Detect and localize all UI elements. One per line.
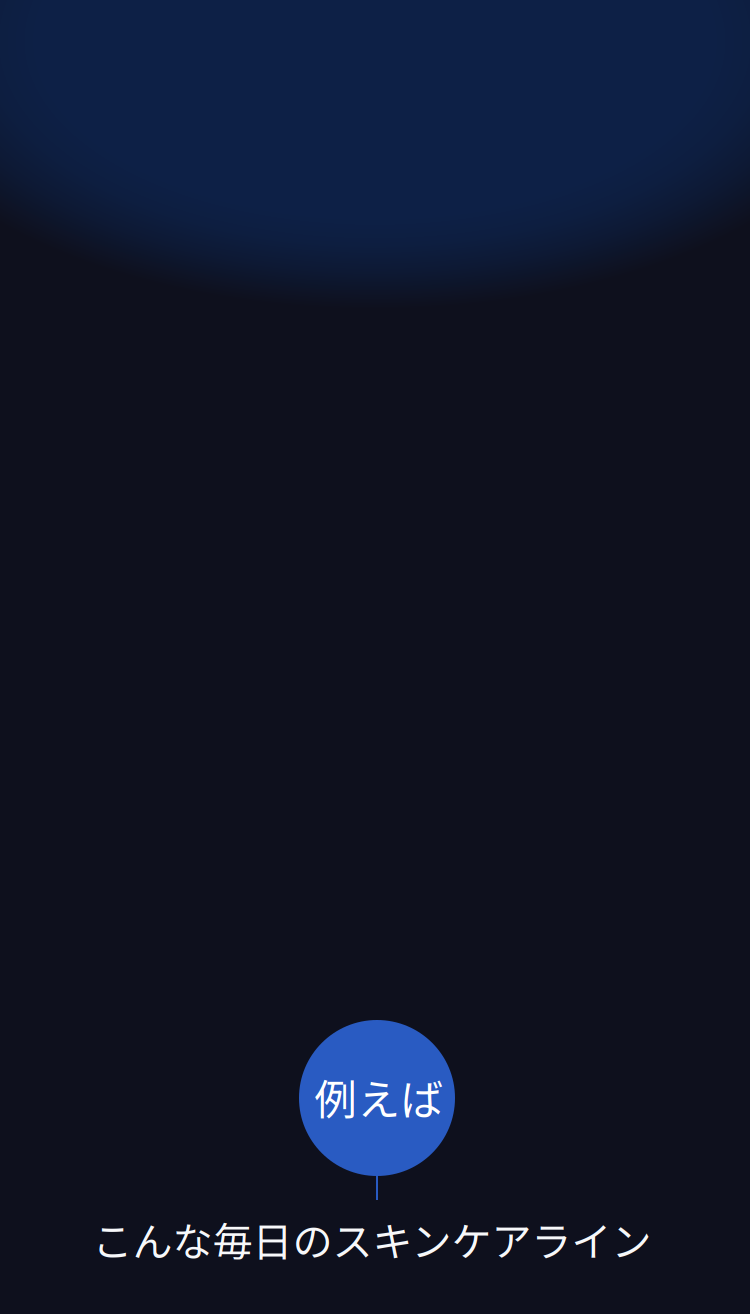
button[interactable]: 例えば xyxy=(275,1020,475,1200)
staticText: こんな毎日のスキンケアライン xyxy=(92,1210,651,1268)
staticText: 例えば xyxy=(314,1066,443,1128)
